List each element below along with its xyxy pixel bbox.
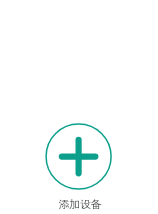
button[interactable]: 添加设备 — [44, 195, 114, 212]
button[interactable]: 添加设备 — [45, 123, 113, 191]
staticText: 添加设备 — [58, 198, 102, 212]
